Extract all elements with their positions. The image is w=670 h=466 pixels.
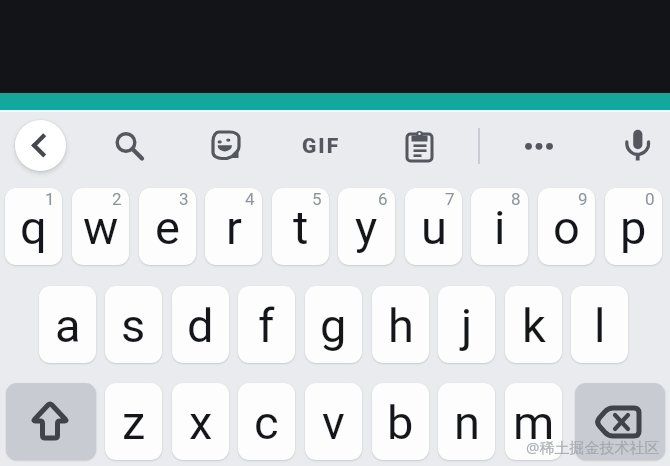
staticText: e bbox=[155, 200, 180, 255]
staticText: t bbox=[293, 200, 309, 255]
staticText: o bbox=[553, 200, 580, 255]
button[interactable]: y bbox=[338, 188, 395, 265]
button[interactable]: GIF bbox=[302, 134, 341, 159]
staticText: l bbox=[594, 298, 606, 353]
staticText: 2 bbox=[112, 189, 122, 209]
staticText: x bbox=[189, 395, 213, 450]
button[interactable]: d bbox=[172, 286, 229, 363]
button[interactable]: o bbox=[538, 188, 595, 265]
staticText: 5 bbox=[312, 189, 322, 209]
button[interactable]: b bbox=[372, 383, 429, 460]
button[interactable]: j bbox=[438, 286, 495, 363]
button[interactable]: w bbox=[72, 188, 129, 265]
staticText: a bbox=[55, 298, 81, 353]
staticText: 3 bbox=[179, 189, 189, 209]
staticText: m bbox=[513, 395, 555, 450]
staticText: g bbox=[320, 298, 347, 353]
staticText: 7 bbox=[445, 189, 455, 209]
button[interactable]: q bbox=[5, 188, 62, 265]
staticText: y bbox=[355, 200, 378, 255]
button[interactable]: n bbox=[438, 383, 495, 460]
button[interactable]: s bbox=[105, 286, 162, 363]
staticText: j bbox=[461, 298, 473, 353]
button[interactable]: g bbox=[305, 286, 362, 363]
button[interactable] bbox=[516, 123, 562, 169]
staticText: r bbox=[226, 200, 242, 255]
button[interactable]: v bbox=[305, 383, 362, 460]
button[interactable]: t bbox=[272, 188, 329, 265]
button[interactable]: z bbox=[105, 383, 162, 460]
staticText: 8 bbox=[511, 189, 521, 209]
button[interactable]: f bbox=[238, 286, 295, 363]
staticText: i bbox=[494, 200, 506, 255]
button[interactable]: c bbox=[238, 383, 295, 460]
staticText: u bbox=[421, 200, 447, 255]
button[interactable]: r bbox=[205, 188, 262, 265]
staticText: p bbox=[620, 200, 647, 255]
staticText: 9 bbox=[578, 189, 588, 209]
button[interactable] bbox=[15, 120, 66, 171]
staticText: w bbox=[83, 200, 119, 255]
button[interactable]: i bbox=[471, 188, 528, 265]
staticText: z bbox=[122, 395, 146, 450]
staticText: 1 bbox=[45, 189, 55, 209]
staticText: 0 bbox=[645, 189, 655, 209]
button[interactable]: u bbox=[405, 188, 462, 265]
staticText: h bbox=[388, 298, 414, 353]
staticText: v bbox=[322, 395, 345, 450]
button[interactable] bbox=[575, 383, 665, 460]
staticText: n bbox=[454, 395, 480, 450]
button[interactable] bbox=[618, 123, 664, 169]
staticText: f bbox=[258, 298, 275, 353]
button[interactable]: e bbox=[139, 188, 196, 265]
staticText: d bbox=[187, 298, 214, 353]
button[interactable] bbox=[105, 123, 151, 169]
staticText: c bbox=[254, 395, 279, 450]
button[interactable]: k bbox=[505, 286, 562, 363]
staticText: 6 bbox=[378, 189, 388, 209]
button[interactable]: a bbox=[39, 286, 96, 363]
staticText: q bbox=[20, 200, 47, 255]
staticText: s bbox=[121, 298, 146, 353]
staticText: @稀土掘金技术社区 bbox=[526, 437, 660, 457]
button[interactable]: x bbox=[172, 383, 229, 460]
button[interactable]: p bbox=[605, 188, 662, 265]
button[interactable]: l bbox=[571, 286, 628, 363]
button[interactable] bbox=[397, 123, 443, 169]
button[interactable] bbox=[6, 383, 96, 460]
staticText: b bbox=[387, 395, 414, 450]
staticText: 4 bbox=[245, 189, 255, 209]
staticText: k bbox=[522, 298, 546, 353]
button[interactable]: m bbox=[505, 383, 562, 460]
button[interactable]: h bbox=[372, 286, 429, 363]
button[interactable] bbox=[202, 123, 248, 169]
